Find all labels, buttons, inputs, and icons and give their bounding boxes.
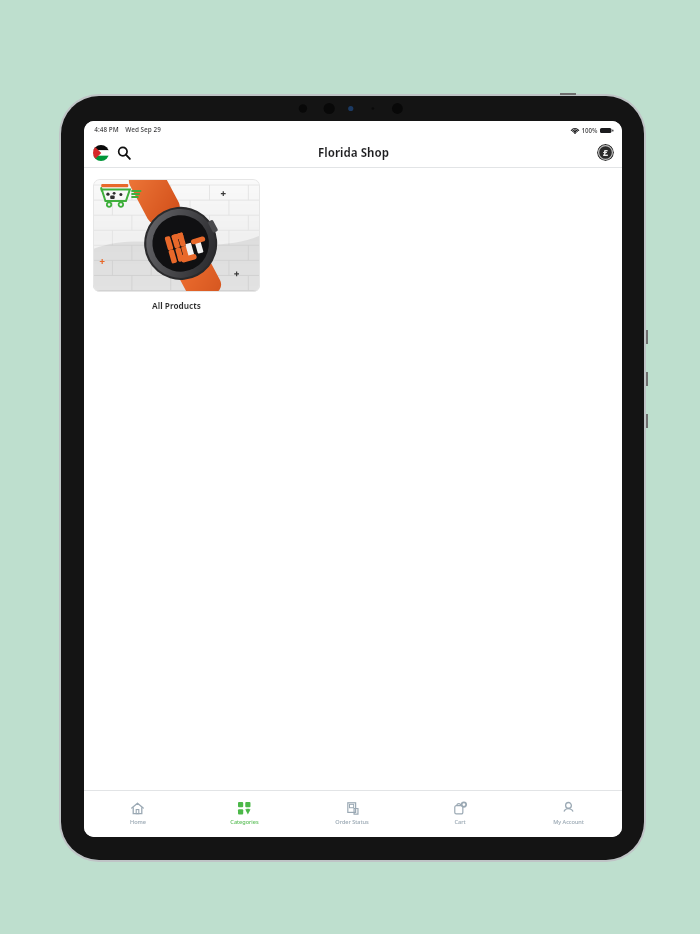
button[interactable]: Language	[93, 145, 109, 161]
button[interactable]: Currency	[597, 144, 614, 161]
button[interactable]: Cart	[406, 791, 514, 837]
button[interactable]: Home	[84, 791, 191, 837]
button[interactable]: Search	[115, 144, 133, 162]
staticText: My Account	[553, 818, 584, 826]
button[interactable]: Order Status	[298, 791, 406, 837]
staticText: 4:48 PM	[94, 125, 119, 134]
staticText: Wed Sep 29	[125, 125, 161, 134]
button[interactable]: Categories	[191, 791, 298, 837]
button[interactable]	[93, 179, 260, 292]
staticText: Home	[130, 818, 146, 826]
staticText: Cart	[454, 818, 466, 826]
staticText: Categories	[230, 818, 259, 826]
staticText: Order Status	[335, 818, 369, 826]
staticText: All Products	[152, 300, 201, 311]
button[interactable]: My Account	[514, 791, 622, 837]
staticText: Florida Shop	[318, 145, 389, 161]
button[interactable]: All Products	[91, 179, 261, 311]
staticText: 100%	[581, 126, 598, 134]
staticText: £	[603, 147, 608, 159]
